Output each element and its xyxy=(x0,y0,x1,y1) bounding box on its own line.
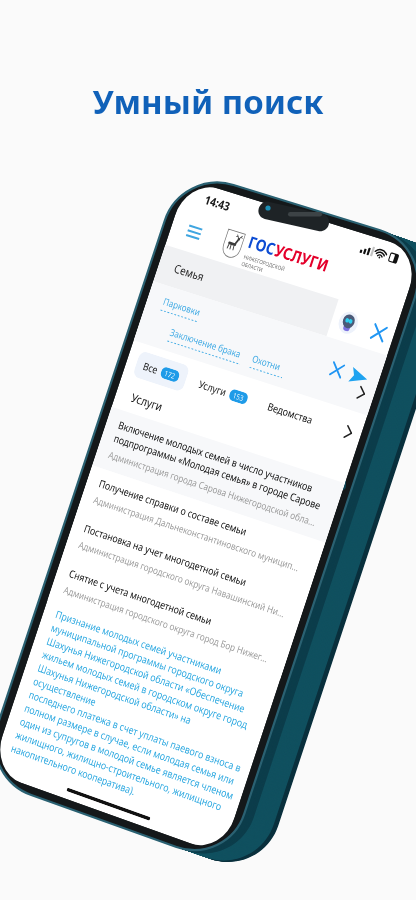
button[interactable]: Assistant xyxy=(290,94,342,146)
staticText: Снятие с учета многодетной семьи xyxy=(20,546,259,565)
staticText: 153 xyxy=(179,252,197,266)
staticText: Ведомства xyxy=(237,249,311,268)
button[interactable]: Услуги xyxy=(110,240,215,277)
staticText: Услуги xyxy=(122,249,167,268)
staticText: Умный поиск xyxy=(0,79,416,124)
button[interactable]: Снятие с учета многодетной семьи xyxy=(0,536,390,600)
staticText: Администрация города Сарова Нижегородско… xyxy=(20,378,366,396)
staticText: Включение молодых семей в число участник… xyxy=(20,335,365,373)
button[interactable]: Семья xyxy=(0,94,290,146)
staticText: Администрация городского округа город Бо… xyxy=(20,570,361,588)
staticText: Охотни xyxy=(190,195,236,213)
button[interactable]: Ведомства xyxy=(225,240,323,277)
staticText: Получение справки о составе семьи xyxy=(20,418,267,437)
button[interactable]: Признание молодых семей участниками муни… xyxy=(0,600,390,813)
button[interactable]: Получение справки о составе семьи xyxy=(0,408,390,472)
staticText: Администрация городского округа Навашинс… xyxy=(20,506,364,524)
staticText: Заключение брака xyxy=(52,195,170,213)
button[interactable]: Охотни xyxy=(190,195,244,218)
button[interactable]: Включение молодых семей в число участник… xyxy=(0,325,390,408)
staticText: Признание молодых семей участниками муни… xyxy=(20,604,378,813)
button[interactable]: Постановка на учет многодетной семьи xyxy=(0,472,390,536)
staticText: Постановка на учет многодетной семьи xyxy=(20,482,292,501)
button[interactable]: Заключение брака xyxy=(52,195,174,218)
staticText: Администрация Дальнеконстантиновского му… xyxy=(20,442,363,460)
